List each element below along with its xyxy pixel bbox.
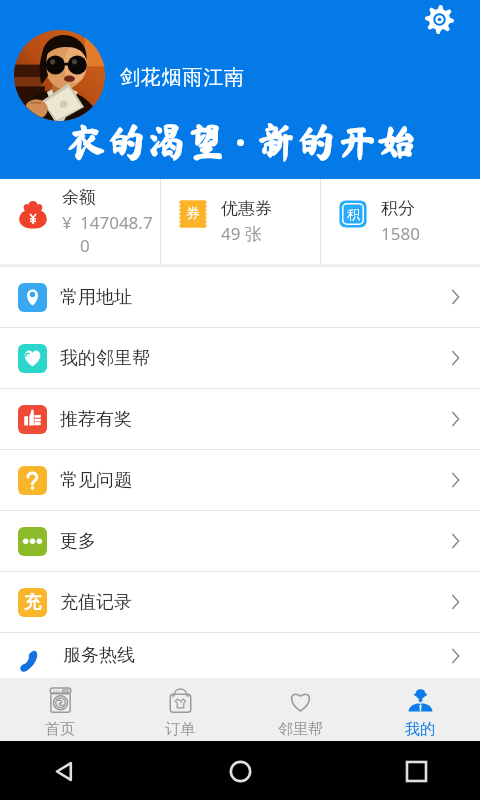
staticText: ¥	[62, 211, 72, 234]
staticText: 订单	[165, 720, 195, 739]
button[interactable]: 服务热线	[0, 633, 480, 678]
button[interactable]: Recents	[396, 751, 436, 791]
staticText: 我的邻里帮	[60, 347, 150, 370]
staticText: 充值记录	[60, 591, 132, 614]
button[interactable]: Home	[220, 751, 260, 791]
staticText: 积分	[381, 198, 415, 219]
staticText: 衣的渴望 · 新的开始	[66, 115, 416, 168]
button[interactable]: 余额	[0, 179, 160, 264]
button[interactable]: Settings	[416, 0, 462, 42]
button[interactable]: 推荐有奖	[0, 389, 480, 449]
button[interactable]: Back	[44, 751, 84, 791]
button[interactable]: Avatar	[14, 30, 105, 121]
button[interactable]: 常见问题	[0, 450, 480, 510]
staticText: 充	[24, 592, 41, 613]
staticText: 常用地址	[60, 286, 132, 309]
button[interactable]: 券	[161, 179, 320, 264]
staticText: 剑花烟雨江南	[120, 65, 245, 90]
staticText: 147048.7 0	[80, 211, 153, 257]
button[interactable]: 更多	[0, 511, 480, 571]
button[interactable]: 首页	[0, 678, 120, 741]
button[interactable]: 我的	[360, 678, 480, 741]
button[interactable]: 充	[0, 572, 480, 632]
staticText: 余额	[62, 187, 96, 208]
staticText: 券	[186, 205, 200, 223]
staticText: 邻里帮	[278, 720, 323, 739]
staticText: 我的	[405, 720, 435, 739]
button[interactable]: 我的邻里帮	[0, 328, 480, 388]
staticText: 常见问题	[60, 469, 132, 492]
staticText: 积	[347, 206, 360, 222]
staticText: 优惠券	[221, 198, 272, 219]
button[interactable]: 订单	[120, 678, 240, 741]
staticText: 服务热线	[63, 644, 135, 667]
button[interactable]: 邻里帮	[240, 678, 360, 741]
staticText: 推荐有奖	[60, 408, 132, 431]
staticText: 1580	[381, 222, 420, 245]
button[interactable]: 常用地址	[0, 267, 480, 327]
staticText: 49 张	[221, 222, 262, 245]
staticText: 更多	[60, 530, 96, 553]
button[interactable]: 积	[321, 179, 480, 264]
staticText: 首页	[45, 720, 75, 739]
